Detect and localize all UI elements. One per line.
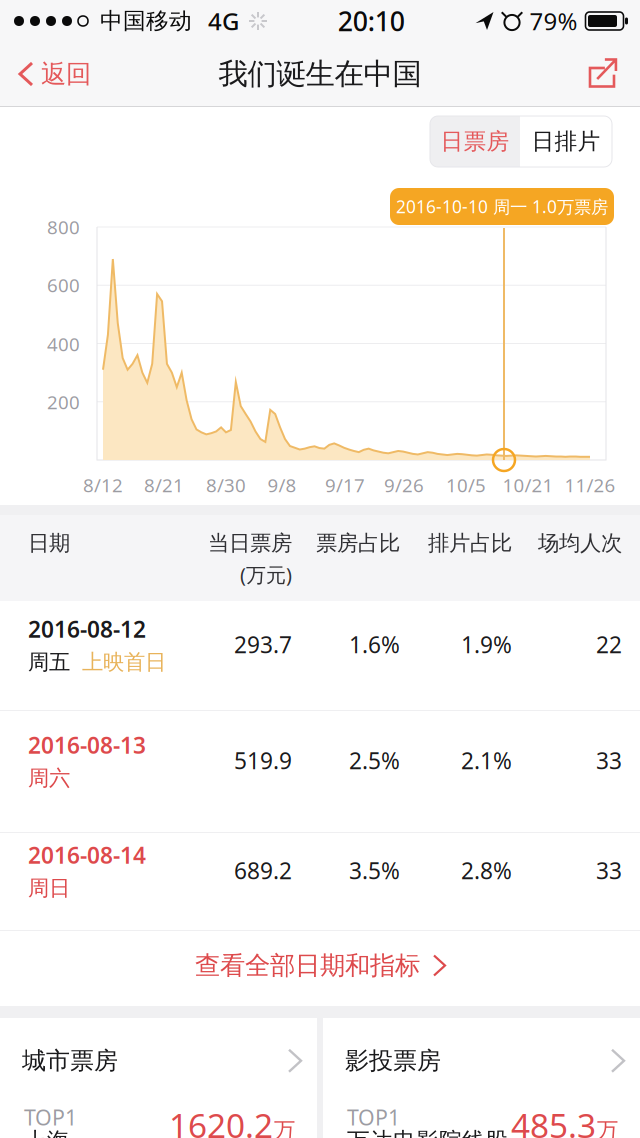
staticText: 2016-08-13: [28, 730, 146, 760]
staticText: 20:10: [338, 3, 405, 39]
staticText: 22: [596, 629, 622, 659]
staticText: 1620.2: [169, 1103, 273, 1138]
button[interactable]: 查看全部日期和指标: [0, 931, 640, 1006]
staticText: 周日: [28, 875, 70, 901]
staticText: TOP1: [24, 1103, 77, 1131]
button[interactable]: 城市票房: [0, 1018, 317, 1138]
staticText: 查看全部日期和指标: [195, 950, 420, 981]
button[interactable]: 分享: [568, 42, 640, 106]
staticText: 600: [47, 273, 80, 297]
button[interactable]: 日排片: [520, 116, 612, 167]
staticText: 当日票房: [208, 530, 292, 556]
staticText: 485.3: [511, 1103, 596, 1138]
button[interactable]: 2016-08-14: [0, 833, 640, 930]
staticText: 场均人次: [538, 530, 622, 556]
staticText: 2.1%: [461, 745, 512, 775]
staticText: 10/21: [502, 473, 553, 497]
staticText: TOP1: [347, 1103, 400, 1131]
staticText: 排片占比: [428, 530, 512, 556]
staticText: 2016-10-10 周一 1.0万票房: [396, 195, 608, 218]
staticText: 返回: [41, 58, 91, 89]
staticText: 400: [47, 332, 80, 356]
staticText: 中国移动: [100, 7, 192, 35]
staticText: 33: [596, 745, 622, 775]
staticText: 上映首日: [82, 649, 166, 675]
staticText: 200: [47, 390, 80, 414]
staticText: 我们诞生在中国: [218, 56, 421, 92]
staticText: 800: [47, 215, 80, 239]
staticText: (万元): [240, 561, 292, 588]
staticText: 8/30: [206, 473, 246, 497]
staticText: 11/26: [564, 473, 615, 497]
staticText: 689.2: [234, 855, 292, 885]
staticText: 3.5%: [349, 855, 400, 885]
staticText: 2016-08-14: [28, 840, 146, 870]
staticText: 1.9%: [461, 629, 512, 659]
staticText: 周五: [28, 649, 70, 675]
staticText: 4G: [208, 5, 239, 37]
staticText: 2.8%: [461, 855, 512, 885]
staticText: 2.5%: [349, 745, 400, 775]
button[interactable]: 2016-08-13: [0, 711, 640, 832]
staticText: 519.9: [234, 745, 292, 775]
staticText: 日排片: [531, 128, 600, 155]
staticText: 9/8: [267, 473, 296, 497]
button[interactable]: 影投票房: [323, 1018, 640, 1138]
staticText: 8/12: [83, 473, 123, 497]
staticText: 79%: [529, 5, 577, 37]
staticText: 万: [597, 1117, 618, 1138]
staticText: 293.7: [234, 629, 292, 659]
staticText: 10/5: [446, 473, 486, 497]
staticText: 日期: [28, 530, 70, 556]
staticText: 9/17: [325, 473, 365, 497]
staticText: 影投票房: [345, 1046, 441, 1075]
staticText: 8/21: [144, 473, 184, 497]
staticText: 万达电影院线股: [347, 1127, 508, 1138]
button[interactable]: 2016-08-12: [0, 601, 640, 710]
staticText: 万: [274, 1117, 295, 1138]
button[interactable]: 日票房: [430, 116, 520, 167]
staticText: 周六: [28, 765, 70, 791]
staticText: 上海: [24, 1127, 70, 1138]
button[interactable]: 返回: [0, 42, 107, 106]
staticText: 9/26: [384, 473, 424, 497]
staticText: 33: [596, 855, 622, 885]
staticText: 日票房: [440, 128, 509, 155]
staticText: 票房占比: [316, 530, 400, 556]
staticText: 2016-08-12: [28, 614, 146, 644]
staticText: 城市票房: [22, 1046, 118, 1075]
staticText: 1.6%: [349, 629, 400, 659]
